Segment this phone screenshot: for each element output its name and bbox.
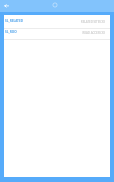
staticText: RELATED SITES XX [80, 20, 105, 24]
staticText: SL_ROO [5, 30, 17, 34]
staticText: READ ACCESS XX [82, 31, 105, 35]
button[interactable]: Refresh [51, 1, 59, 9]
staticText: SL_RELATED [5, 19, 23, 23]
button[interactable]: SL_ROO [4, 29, 110, 40]
button[interactable]: Back [0, 1, 11, 12]
button[interactable]: SL_RELATED [4, 18, 110, 29]
